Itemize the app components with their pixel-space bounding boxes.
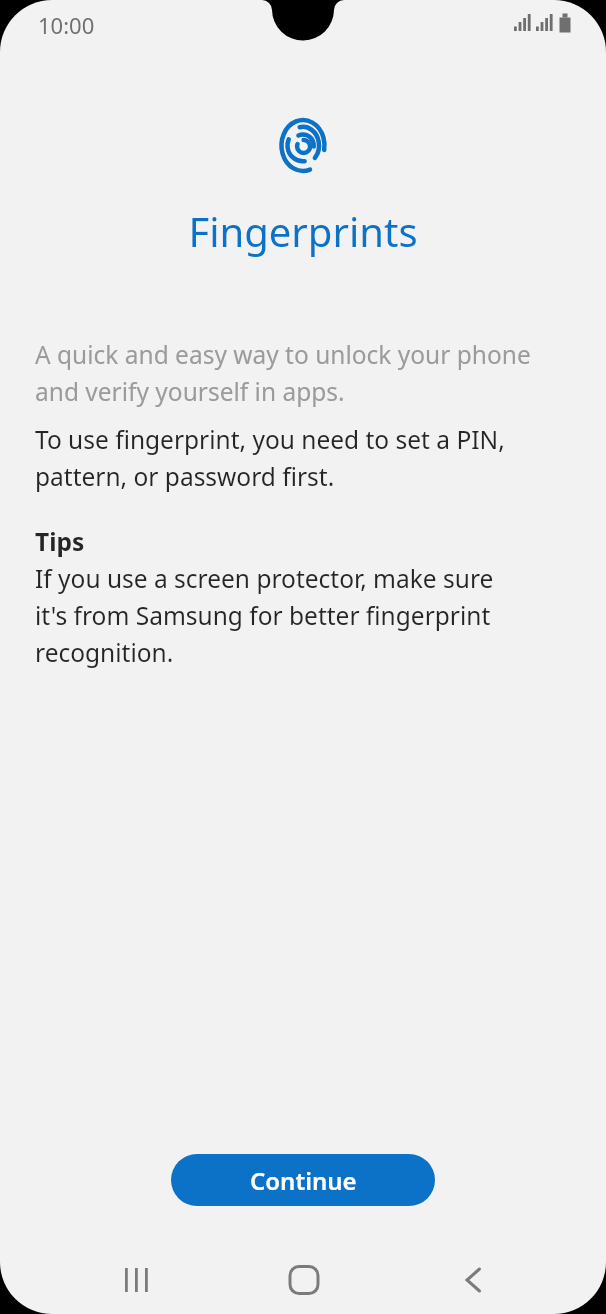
- staticText: To use fingerprint, you need to set a PI…: [35, 423, 580, 493]
- staticText: Continue: [250, 1164, 357, 1197]
- staticText: Tips: [35, 525, 85, 558]
- button[interactable]: [443, 1250, 503, 1310]
- staticText: A quick and easy way to unlock your phon…: [35, 338, 580, 408]
- button[interactable]: Continue: [171, 1154, 435, 1206]
- staticText: Fingerprints: [0, 204, 606, 258]
- staticText: 10:00: [38, 10, 95, 40]
- button[interactable]: [106, 1250, 166, 1310]
- staticText: If you use a screen protector, make sure…: [35, 562, 580, 669]
- button[interactable]: [274, 1250, 334, 1310]
